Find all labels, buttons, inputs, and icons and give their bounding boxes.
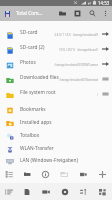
staticText: File system root: [20, 89, 56, 96]
button[interactable]: New folder: [55, 166, 74, 183]
button[interactable]: LAN (Windows-Freigaben): [0, 155, 112, 166]
staticText: /: [20, 93, 98, 97]
staticText: Photos: [20, 59, 36, 66]
button[interactable]: Video: [36, 183, 55, 200]
staticText: /storage/emulated/0/DCIM/Camera: [20, 63, 98, 67]
staticText: Totalbox: [20, 132, 40, 139]
button[interactable]: Properties: [74, 166, 93, 183]
button[interactable]: Info: [36, 166, 55, 183]
button[interactable]: Search: [85, 6, 100, 21]
button[interactable]: Photos: [0, 58, 112, 73]
button[interactable]: WLAN-Transfer: [0, 142, 112, 155]
staticText: Total Com...: [16, 10, 43, 17]
button[interactable]: Downloaded files: [0, 73, 112, 88]
staticText: Installed apps: [20, 119, 52, 126]
button[interactable]: SD-card: [0, 28, 112, 43]
button[interactable]: File system root: [0, 88, 112, 103]
button[interactable]: Select all: [70, 6, 85, 21]
staticText: WLAN-Transfer: [20, 145, 54, 152]
button[interactable]: Apps: [93, 183, 112, 200]
button[interactable]: SD-card (2): [0, 43, 112, 58]
button[interactable]: Close: [55, 183, 74, 200]
staticText: 14:53: [98, 0, 110, 6]
staticText: Bookmarks: [20, 106, 46, 113]
button[interactable]: Sort by name: [74, 183, 93, 200]
staticText: SD-card: [20, 29, 38, 36]
button[interactable]: Details: [0, 166, 18, 183]
staticText: SD-card (2): [20, 44, 45, 51]
button[interactable]: Add: [93, 166, 112, 183]
button[interactable]: Installed apps: [0, 116, 112, 129]
staticText: Downloaded files: [20, 74, 59, 81]
staticText: LAN (Windows-Freigaben): [20, 157, 78, 164]
button[interactable]: Totalbox: [0, 129, 112, 142]
staticText: 7.9 G / 29.7 G /storage/sdcard1: [20, 48, 98, 52]
button[interactable]: Thumbnails: [18, 166, 36, 183]
button[interactable]: More options: [100, 6, 110, 21]
button[interactable]: Bookmarks: [0, 103, 112, 116]
button[interactable]: New file: [18, 183, 36, 200]
staticText: /storage/emulated/0/Download: [20, 78, 98, 82]
staticText: 2.8 G / 11.8 G /storage/emulated/0: [20, 33, 98, 37]
button[interactable]: Sort options: [0, 183, 18, 200]
button[interactable]: Folder: [55, 6, 70, 21]
